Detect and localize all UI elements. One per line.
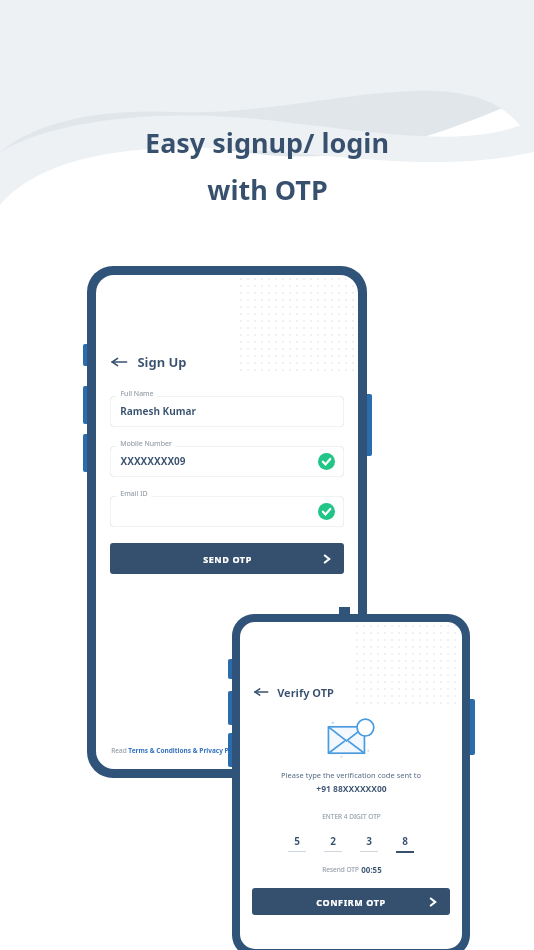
other: Back [253,684,269,700]
staticText: Full Name [120,389,154,399]
button[interactable]: CONFIRM OTP [252,888,450,915]
staticText: Please type the verification code sent t… [281,770,421,780]
button[interactable]: SEND OTP [110,543,344,574]
other: Back [110,353,128,371]
staticText: Email ID [120,489,148,499]
staticText: Sign Up [137,353,187,371]
staticText: 8 [402,834,408,848]
button[interactable]: Resend OTP [320,864,382,875]
staticText: 5 [294,834,300,848]
button[interactable]: Mobile Number [110,439,344,477]
staticText: 3 [366,834,372,848]
staticText: Terms & Conditions & Privacy Policy [128,746,244,755]
button[interactable]: Email ID [110,489,344,527]
button[interactable]: Back [253,684,462,700]
staticText: ENTER 4 DIGIT OTP [322,812,381,821]
staticText: Read [110,746,128,755]
staticText: XXXXXXXX09 [120,454,186,468]
staticText: Resend OTP [320,865,361,874]
staticText: +91 88XXXXXX00 [316,783,387,795]
staticText: 2 [330,834,336,848]
staticText: CONFIRM OTP [316,896,386,908]
staticText: Ramesh Kumar [120,404,196,418]
staticText: Mobile Number [120,439,172,449]
button[interactable]: Back [110,353,187,371]
staticText: 00:55 [361,864,382,875]
button[interactable]: Full Name [110,389,344,427]
staticText: Verify OTP [277,685,334,700]
staticText: SEND OTP [203,553,252,565]
staticText: Easy signup/ login [145,124,389,161]
button[interactable]: Read [110,746,244,755]
staticText: with OTP [207,171,328,208]
